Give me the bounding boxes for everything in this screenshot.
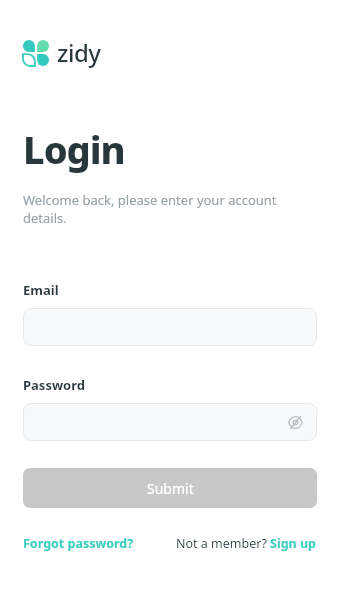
staticText: Forgot password? — [23, 535, 134, 552]
staticText: Password — [23, 376, 85, 394]
staticText: Email — [23, 281, 59, 299]
button[interactable] — [23, 308, 317, 346]
button[interactable]: Show password — [285, 412, 305, 432]
staticText: Submit — [147, 479, 194, 498]
staticText: Not a member? Sign up — [176, 535, 317, 552]
button[interactable]: Show password — [23, 403, 317, 441]
staticText: Welcome back, please enter your account … — [23, 191, 317, 227]
button[interactable]: Submit — [23, 468, 317, 508]
staticText: zidy — [57, 36, 101, 69]
staticText: Login — [23, 123, 125, 175]
button[interactable]: Not a member? Sign up — [176, 535, 317, 552]
button[interactable]: Forgot password? — [23, 535, 134, 552]
